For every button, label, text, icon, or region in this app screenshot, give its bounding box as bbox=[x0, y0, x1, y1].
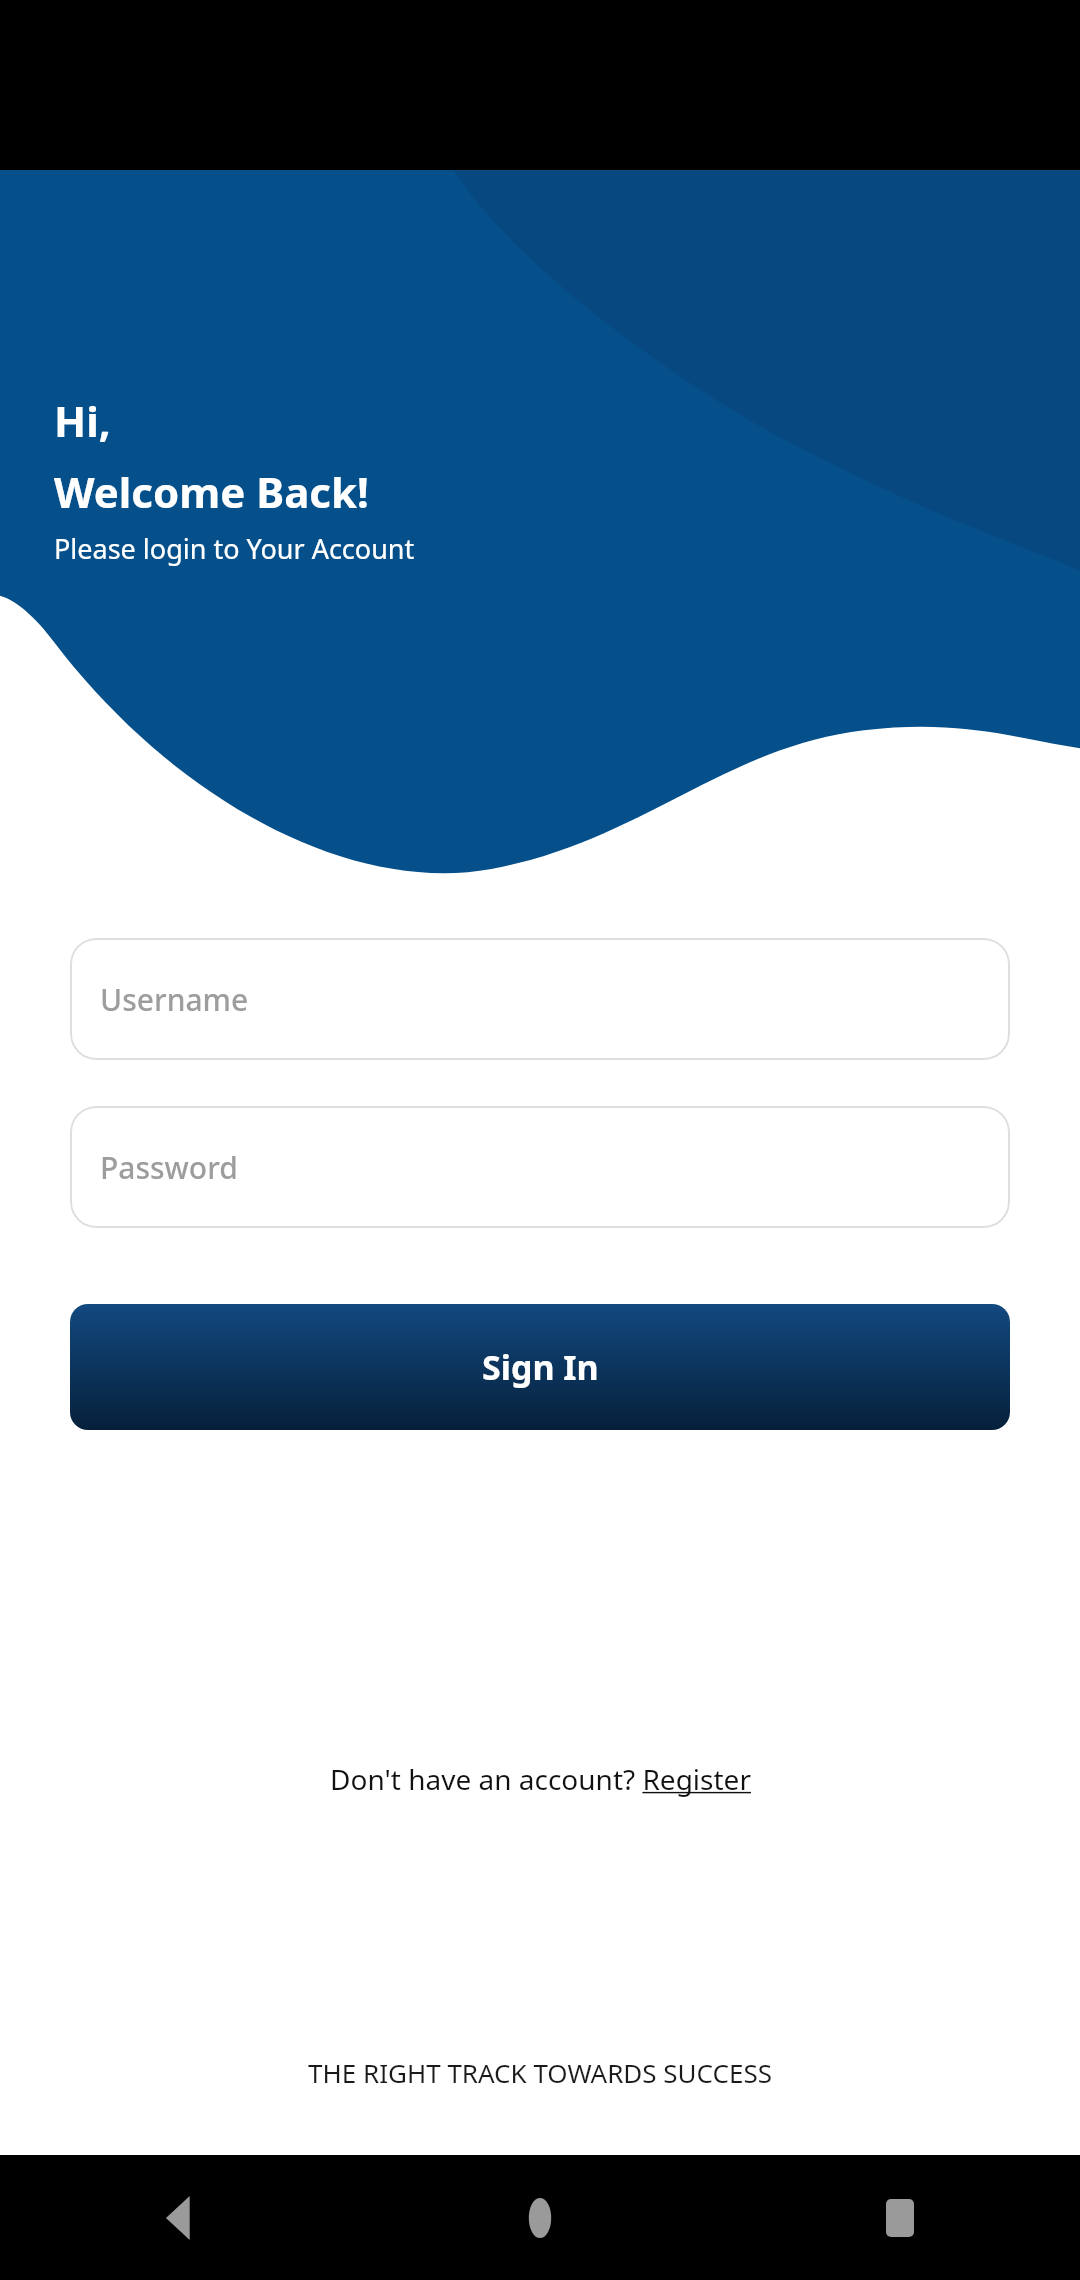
button[interactable]: Home bbox=[485, 2163, 595, 2273]
button[interactable]: Back bbox=[125, 2163, 235, 2273]
staticText: Password bbox=[100, 1147, 238, 1188]
staticText: Please login to Your Account bbox=[54, 530, 415, 567]
staticText: Username bbox=[100, 979, 249, 1020]
button[interactable]: Password bbox=[70, 1106, 1010, 1228]
staticText: THE RIGHT TRACK TOWARDS SUCCESS bbox=[308, 2055, 772, 2090]
button[interactable]: Username bbox=[70, 938, 1010, 1060]
button[interactable]: Don't have an account? Register bbox=[0, 1760, 1080, 1798]
staticText: Hi, bbox=[54, 392, 111, 449]
button[interactable]: Sign In bbox=[70, 1304, 1010, 1430]
staticText: Sign In bbox=[482, 1344, 599, 1390]
staticText: Don't have an account? Register bbox=[330, 1760, 751, 1798]
staticText: Welcome Back! bbox=[54, 463, 369, 520]
button[interactable]: Recent apps bbox=[845, 2163, 955, 2273]
